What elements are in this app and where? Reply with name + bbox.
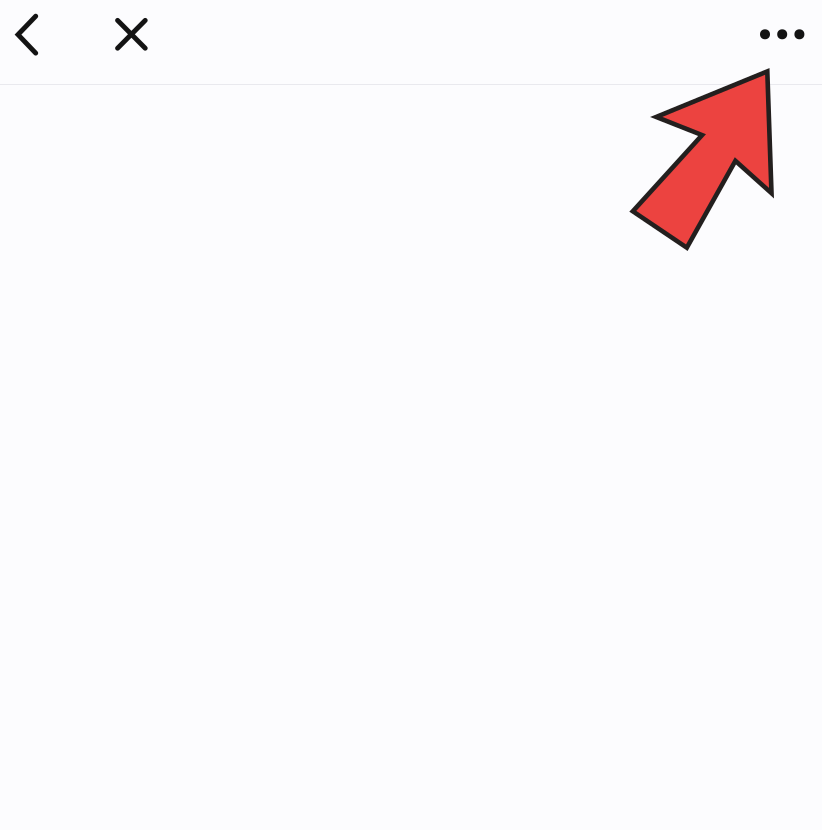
button[interactable]: Close	[109, 11, 153, 55]
button[interactable]: More options	[760, 11, 804, 55]
button[interactable]: Back	[11, 11, 55, 55]
